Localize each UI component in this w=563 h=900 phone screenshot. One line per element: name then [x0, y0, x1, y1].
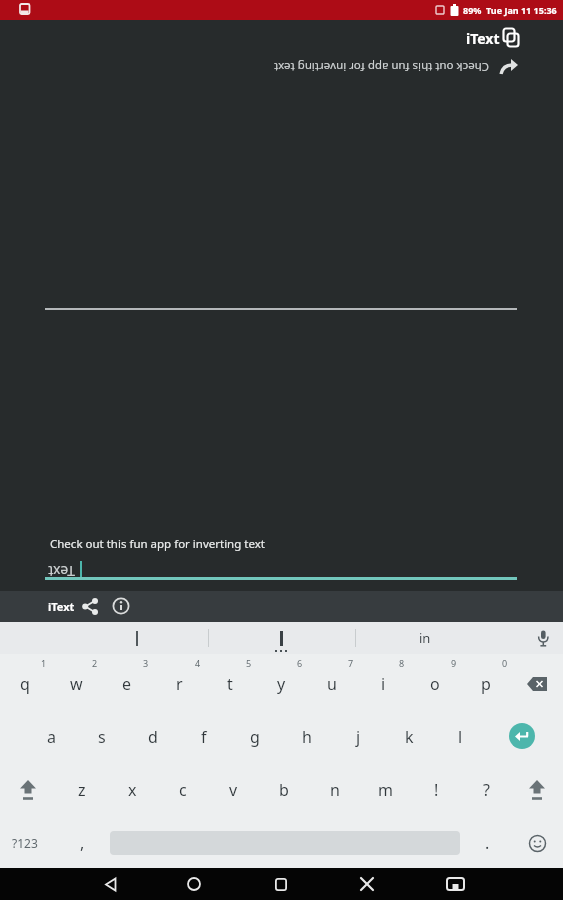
button[interactable]: y [256, 659, 306, 709]
staticText: q [20, 673, 30, 695]
staticText: 4 [195, 657, 201, 669]
staticText: i [381, 673, 386, 695]
staticText: ! [434, 779, 439, 801]
staticText: . [485, 832, 490, 854]
button[interactable] [170, 868, 218, 900]
staticText: j [356, 726, 361, 748]
staticText: m [378, 779, 393, 801]
staticText: k [405, 726, 414, 748]
button[interactable] [3, 765, 53, 815]
button[interactable] [112, 597, 130, 615]
button[interactable]: ! [411, 765, 461, 815]
button[interactable]: in [370, 623, 480, 653]
button[interactable] [536, 630, 551, 647]
button[interactable]: i [358, 659, 408, 709]
staticText: a [47, 726, 56, 748]
button[interactable]: iText [445, 24, 500, 52]
button[interactable]: k [384, 712, 434, 762]
button[interactable]: a [26, 712, 76, 762]
button[interactable]: e [102, 659, 152, 709]
button[interactable] [431, 868, 479, 900]
button[interactable]: p [461, 659, 511, 709]
button[interactable]: t [205, 659, 255, 709]
staticText: v [229, 779, 238, 801]
button[interactable] [512, 659, 562, 709]
staticText: o [430, 673, 440, 695]
staticText: z [78, 779, 86, 801]
staticText: g [250, 726, 260, 748]
staticText: p [481, 673, 491, 695]
button[interactable] [512, 765, 562, 815]
staticText: w [70, 673, 83, 695]
button[interactable]: iText [44, 591, 78, 622]
button[interactable]: z [57, 765, 107, 815]
button[interactable] [500, 58, 519, 76]
staticText: in [419, 629, 431, 647]
button[interactable]: . [465, 818, 509, 868]
staticText: f [201, 726, 207, 748]
staticText: iText [466, 29, 500, 48]
button[interactable] [86, 868, 134, 900]
staticText: n [330, 779, 340, 801]
staticText: t [227, 673, 233, 695]
button[interactable] [343, 868, 391, 900]
staticText: e [122, 673, 132, 695]
staticText: c [179, 779, 187, 801]
staticText: 2 [92, 657, 98, 669]
staticText: y [277, 673, 286, 695]
staticText: b [279, 779, 289, 801]
staticText: Text [48, 562, 75, 581]
button[interactable]: s [77, 712, 127, 762]
staticText: x [128, 779, 137, 801]
button[interactable] [221, 623, 341, 653]
button[interactable] [82, 598, 99, 615]
staticText: ? [483, 779, 490, 801]
staticText: 0 [502, 657, 508, 669]
staticText: d [148, 726, 158, 748]
staticText: r [176, 673, 183, 695]
button[interactable]: m [360, 765, 410, 815]
button[interactable]: u [307, 659, 357, 709]
button[interactable]: c [158, 765, 208, 815]
button[interactable]: , [60, 818, 104, 868]
button[interactable]: f [179, 712, 229, 762]
staticText: 1 [41, 657, 47, 669]
button[interactable]: g [230, 712, 280, 762]
button[interactable]: r [154, 659, 204, 709]
staticText: l [458, 726, 463, 748]
button[interactable]: x [107, 765, 157, 815]
button[interactable]: o [410, 659, 460, 709]
button[interactable]: q [0, 659, 50, 709]
staticText: Check out this fun app for inverting tex… [274, 59, 489, 75]
staticText: iText [48, 599, 75, 614]
staticText: s [98, 726, 106, 748]
staticText: 8 [399, 657, 405, 669]
staticText: 89% Tue Jan 11 15:36 [463, 4, 557, 16]
button[interactable]: b [259, 765, 309, 815]
button[interactable]: l [435, 712, 485, 762]
button[interactable]: ? [461, 765, 511, 815]
button[interactable] [257, 868, 305, 900]
staticText: 6 [297, 657, 303, 669]
button[interactable]: h [282, 712, 332, 762]
staticText: u [327, 673, 337, 695]
button[interactable]: j [333, 712, 383, 762]
staticText: Check out this fun app for inverting tex… [50, 536, 265, 552]
staticText: , [80, 832, 85, 854]
staticText: 3 [143, 657, 149, 669]
staticText: 5 [246, 657, 252, 669]
staticText: h [302, 726, 312, 748]
button[interactable]: ?123 [0, 818, 50, 868]
button[interactable] [77, 623, 197, 653]
button[interactable]: v [208, 765, 258, 815]
button[interactable] [497, 711, 547, 761]
button[interactable] [512, 818, 562, 868]
staticText: 9 [451, 657, 457, 669]
button[interactable]: n [310, 765, 360, 815]
button[interactable]: w [51, 659, 101, 709]
button[interactable] [502, 28, 521, 49]
staticText: ?123 [12, 835, 38, 851]
button[interactable]: d [128, 712, 178, 762]
